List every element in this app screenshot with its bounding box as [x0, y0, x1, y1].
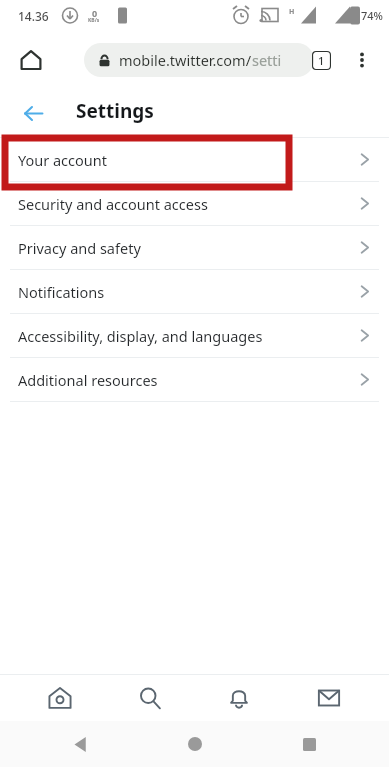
staticText: Notifications	[18, 282, 358, 302]
staticText: Settings	[76, 98, 154, 124]
button[interactable]: Recents	[289, 724, 329, 764]
staticText: mobile.twitter.com/	[119, 50, 252, 70]
button[interactable]: Notifications	[0, 270, 389, 313]
staticText: KB/s	[88, 17, 100, 24]
button[interactable]: Home	[175, 724, 215, 764]
button[interactable]: Back	[14, 94, 52, 132]
button[interactable]: Notifications	[209, 675, 269, 721]
staticText: 1	[318, 53, 325, 68]
staticText: 74%	[361, 8, 383, 23]
staticText: Your account	[18, 150, 358, 170]
staticText: H	[289, 7, 295, 17]
button[interactable]: Privacy and safety	[0, 226, 389, 269]
staticText: Accessibility, display, and languages	[18, 326, 358, 346]
button[interactable]: Search	[120, 675, 180, 721]
button[interactable]: Additional resources	[0, 358, 389, 401]
staticText: Additional resources	[18, 370, 358, 390]
button[interactable]: Home	[30, 675, 90, 721]
button[interactable]: Tabs	[305, 44, 337, 76]
staticText: Security and account access	[18, 194, 358, 214]
button[interactable]: mobile.twitter.com/	[84, 43, 314, 77]
button[interactable]: Messages	[299, 675, 359, 721]
staticText: setti	[252, 50, 282, 70]
button[interactable]: Your account	[0, 138, 389, 181]
button[interactable]: Back	[60, 724, 100, 764]
staticText: Privacy and safety	[18, 238, 358, 258]
staticText: 14.36	[18, 8, 49, 24]
button[interactable]: Accessibility, display, and languages	[0, 314, 389, 357]
button[interactable]: Home	[14, 43, 48, 77]
staticText: 0	[92, 7, 98, 19]
button[interactable]: Security and account access	[0, 182, 389, 225]
button[interactable]: More options	[345, 43, 379, 77]
